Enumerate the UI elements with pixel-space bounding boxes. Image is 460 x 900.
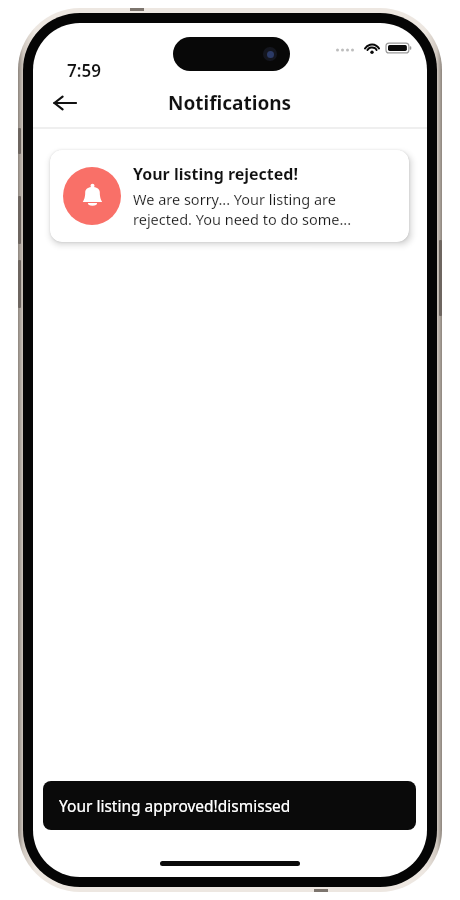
staticText: We are sorry... Your listing are rejecte…	[133, 189, 397, 229]
button[interactable]: Your listing rejected!	[50, 150, 409, 242]
staticText: 7:59	[67, 59, 101, 82]
staticText: Your listing rejected!	[133, 163, 298, 185]
button[interactable]: Back	[43, 81, 87, 125]
staticText: Notifications	[168, 90, 292, 116]
staticText: Your listing approved!dismissed	[59, 795, 291, 816]
button[interactable]: Your listing approved!dismissed	[43, 781, 416, 830]
